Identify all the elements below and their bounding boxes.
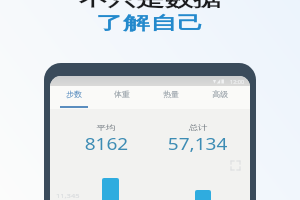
staticText: 12:00	[230, 78, 245, 85]
button[interactable]: 总计	[168, 123, 228, 155]
staticText: 体重	[114, 89, 130, 99]
staticText: 不只是数据	[79, 0, 222, 12]
staticText: 热量	[163, 89, 179, 99]
staticText: 8162	[85, 132, 128, 155]
button[interactable]: 热量	[146, 86, 195, 109]
staticText: 57,134	[168, 132, 228, 155]
staticText: 总计	[189, 123, 207, 132]
button[interactable]: 步数	[50, 86, 98, 109]
staticText: 了解自己	[96, 12, 204, 35]
button[interactable]: 平均	[76, 123, 136, 155]
staticText: 11,345	[56, 192, 80, 200]
button[interactable]: 高级	[195, 86, 244, 109]
staticText: 平均	[97, 123, 115, 132]
button[interactable]: 体重	[98, 86, 146, 109]
staticText: 高级	[212, 89, 228, 99]
staticText: 步数	[66, 89, 82, 99]
button[interactable]: Expand chart	[231, 161, 240, 170]
